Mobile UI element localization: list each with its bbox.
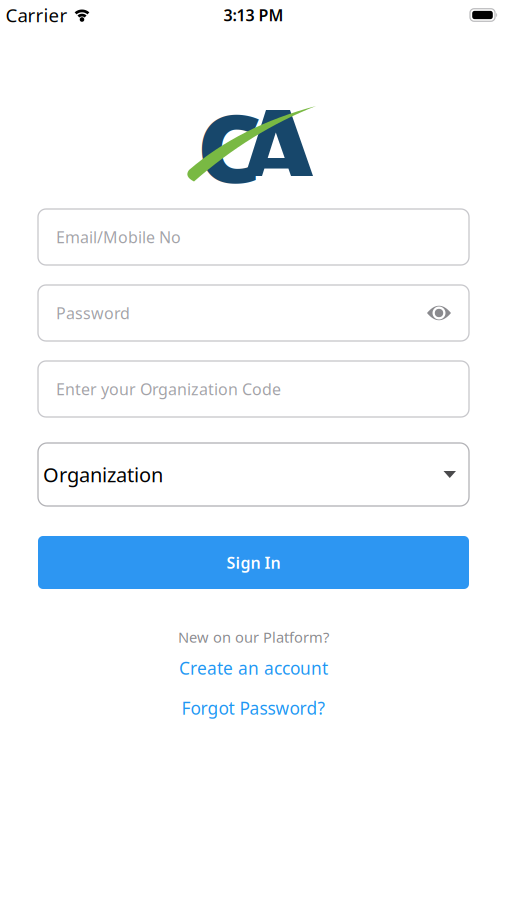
staticText: Organization	[43, 461, 163, 488]
staticText: Enter your Organization Code	[56, 378, 281, 400]
staticText: Create an account	[179, 656, 328, 679]
staticText: Carrier	[5, 3, 67, 27]
button[interactable]: Create an account	[179, 656, 328, 679]
button[interactable]: Forgot Password?	[181, 696, 325, 719]
button[interactable]: Organization	[38, 443, 469, 506]
staticText: Sign In	[226, 552, 280, 573]
staticText: New on our Platform?	[178, 627, 329, 647]
staticText: Password	[56, 302, 130, 324]
button[interactable]: Show password	[426, 304, 452, 322]
staticText: Forgot Password?	[181, 696, 325, 719]
button[interactable]: Sign In	[38, 536, 469, 589]
staticText: Email/Mobile No	[56, 226, 181, 248]
staticText: 3:13 PM	[223, 4, 283, 26]
staticText: C	[198, 83, 259, 209]
